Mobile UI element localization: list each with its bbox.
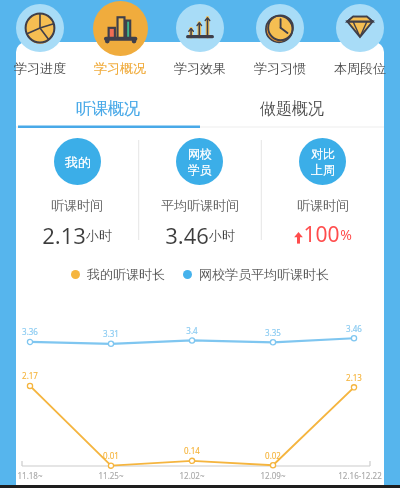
staticText: 11.18~	[17, 470, 43, 481]
staticText: 听课时间	[297, 197, 349, 213]
staticText: 3.36	[22, 326, 38, 337]
staticText: 本周段位	[334, 60, 386, 76]
button[interactable]: 听课概况	[16, 90, 200, 128]
staticText: 2.13	[346, 372, 362, 383]
staticText: 2.17	[22, 370, 38, 381]
staticText: 网校 学员	[188, 146, 212, 178]
staticText: 12.09~	[260, 470, 286, 481]
staticText: 0.01	[103, 450, 119, 461]
button[interactable]: 网校 学员	[138, 138, 261, 246]
staticText: 做题概况	[260, 99, 324, 119]
staticText: 我的听课时长	[87, 266, 165, 282]
staticText: 3.31	[103, 328, 119, 339]
staticText: 2.13	[42, 220, 86, 246]
staticText: 3.4	[186, 325, 198, 336]
button[interactable]: 本周段位	[320, 0, 400, 76]
staticText: 学习效果	[174, 60, 226, 76]
staticText: 0.14	[184, 445, 200, 456]
staticText: 学习进度	[14, 60, 66, 76]
staticText: 学习概况	[94, 60, 146, 76]
staticText: 12.16-12.22	[338, 470, 382, 481]
button[interactable]: 学习效果	[160, 0, 240, 76]
staticText: 对比 上周	[311, 146, 335, 178]
staticText: 3.35	[265, 327, 281, 338]
staticText: 学习习惯	[254, 60, 306, 76]
staticText: 0.02	[265, 450, 281, 461]
staticText: 3.46	[346, 323, 362, 334]
staticText: 11.25~	[98, 470, 124, 481]
staticText: 听课时间	[51, 197, 103, 213]
staticText: 网校学员平均听课时长	[199, 266, 329, 282]
button[interactable]: 学习概况	[80, 0, 160, 76]
staticText: 100	[303, 220, 340, 246]
staticText: 我的	[65, 154, 91, 170]
staticText: 小时	[86, 227, 112, 243]
button[interactable]: 学习进度	[0, 0, 80, 76]
button[interactable]: 做题概况	[200, 90, 384, 128]
staticText: 小时	[209, 227, 235, 243]
staticText: 12.02~	[179, 470, 205, 481]
button[interactable]: 学习习惯	[240, 0, 320, 76]
button[interactable]: 我的	[16, 138, 138, 246]
staticText: 3.46	[165, 220, 209, 246]
staticText: 听课概况	[76, 99, 140, 119]
button[interactable]: 对比 上周	[261, 138, 384, 246]
staticText: %	[340, 225, 352, 244]
staticText: 平均听课时间	[161, 197, 239, 213]
